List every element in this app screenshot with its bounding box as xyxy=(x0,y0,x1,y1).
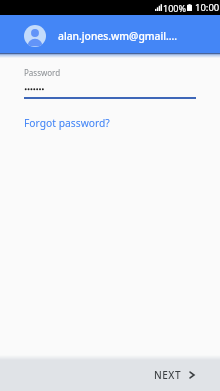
button[interactable]: NEXT xyxy=(134,361,220,391)
button[interactable]: Forgot password? xyxy=(24,116,110,130)
other: Account xyxy=(24,25,46,47)
staticText: Password xyxy=(24,67,61,78)
staticText: 100% xyxy=(163,2,186,14)
staticText: Forgot password? xyxy=(24,116,110,130)
staticText: 10:00 xyxy=(195,1,220,14)
staticText: alan.jones.wm@gmail.... xyxy=(58,29,178,43)
staticText: NEXT xyxy=(154,368,182,382)
button[interactable]: Account xyxy=(0,15,220,53)
